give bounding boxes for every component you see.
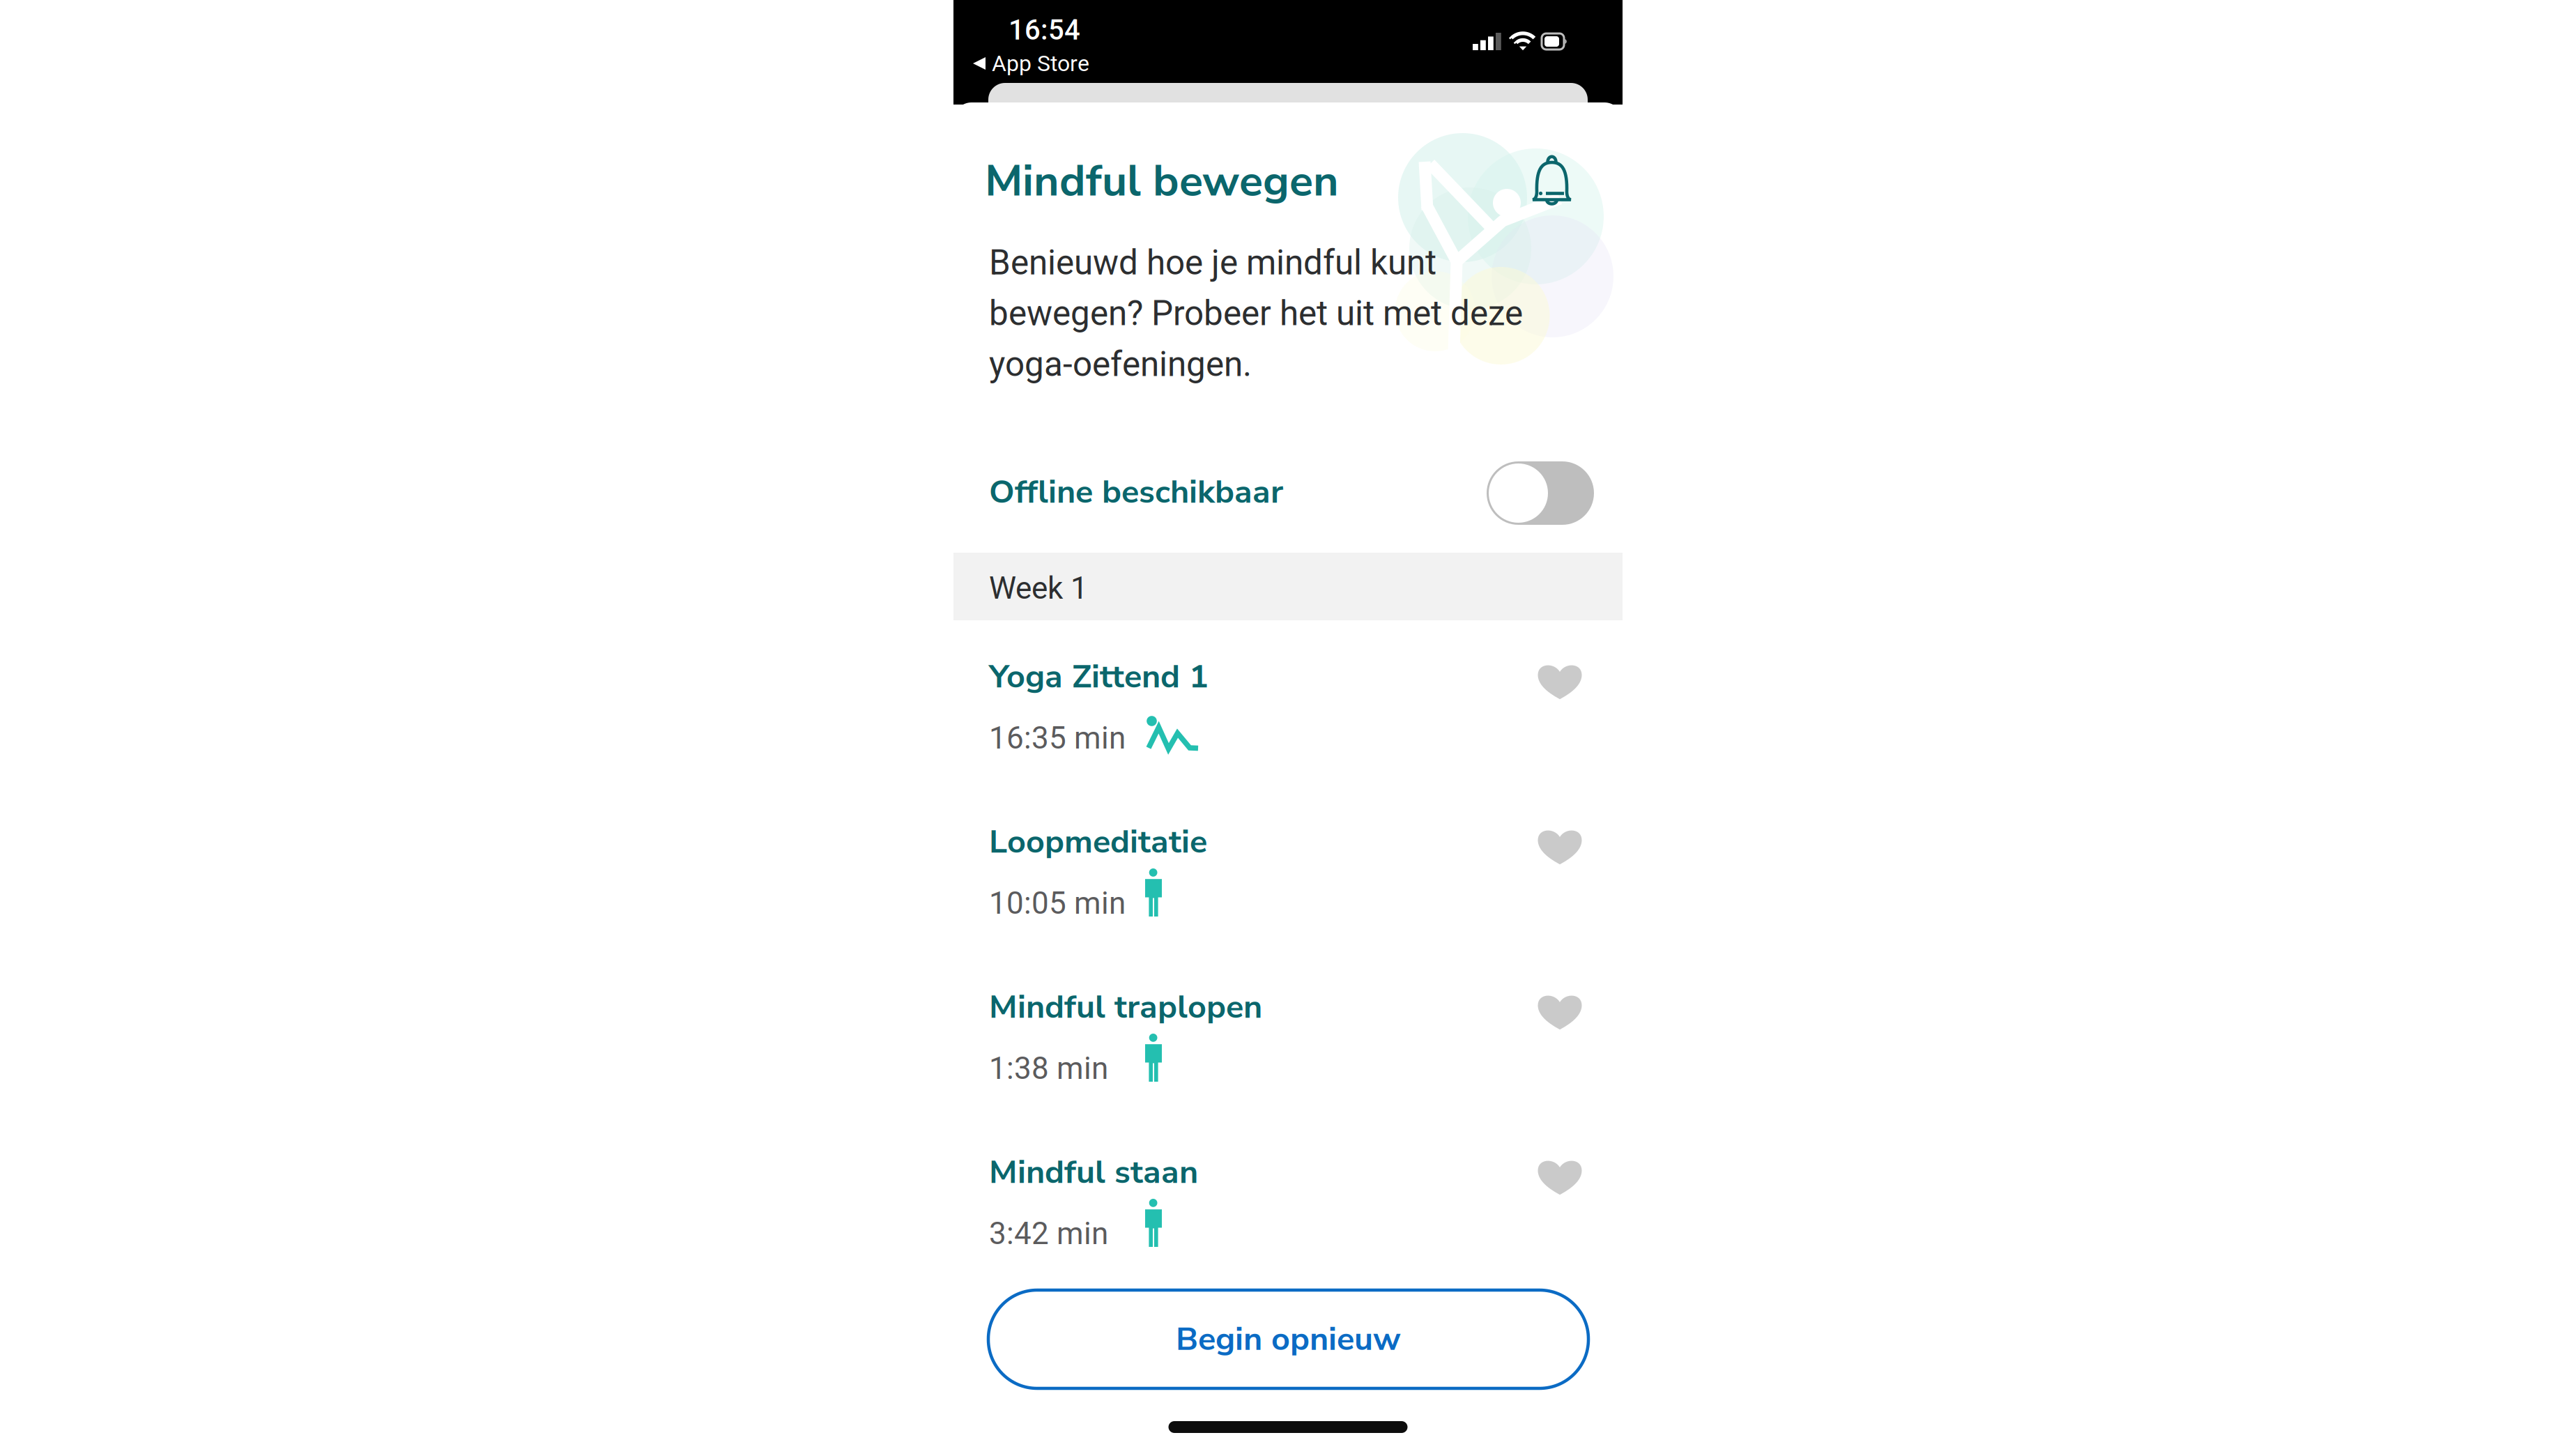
button[interactable]: Begin opnieuw	[988, 1290, 1588, 1388]
staticText: Loopmeditatie	[989, 820, 1207, 864]
button[interactable]: Mindful staan	[953, 1130, 1623, 1270]
button[interactable]: Meldingen	[1531, 154, 1573, 205]
button[interactable]: Favoriet	[1522, 979, 1597, 1045]
staticText: 16:54	[1009, 14, 1080, 46]
button[interactable]: Yoga Zittend 1	[953, 635, 1623, 774]
staticText: 16:35 min	[989, 720, 1126, 756]
button[interactable]: Favoriet	[1522, 814, 1597, 880]
staticText: Benieuwd hoe je mindful kunt bewegen? Pr…	[989, 243, 1523, 384]
button[interactable]: Favoriet	[1522, 1144, 1597, 1210]
staticText: Week 1	[989, 570, 1088, 606]
button[interactable]: Favoriet	[1522, 649, 1597, 714]
button[interactable]: Mindful traplopen	[953, 965, 1623, 1105]
staticText: Begin opnieuw	[1176, 1317, 1401, 1361]
staticText: App Store	[992, 50, 1089, 76]
staticText: Mindful bewegen	[985, 151, 1339, 211]
button[interactable]: App Store	[973, 50, 1112, 77]
staticText: Mindful traplopen	[989, 985, 1262, 1029]
staticText: Offline beschikbaar	[989, 470, 1283, 514]
staticText: 10:05 min	[989, 885, 1126, 921]
button[interactable]: Offline beschikbaar	[953, 447, 1623, 538]
button[interactable]: Loopmeditatie	[953, 800, 1623, 940]
staticText: Yoga Zittend 1	[989, 655, 1209, 699]
staticText: Mindful staan	[989, 1150, 1198, 1195]
staticText: 3:42 min	[989, 1216, 1108, 1252]
staticText: 1:38 min	[989, 1050, 1108, 1086]
